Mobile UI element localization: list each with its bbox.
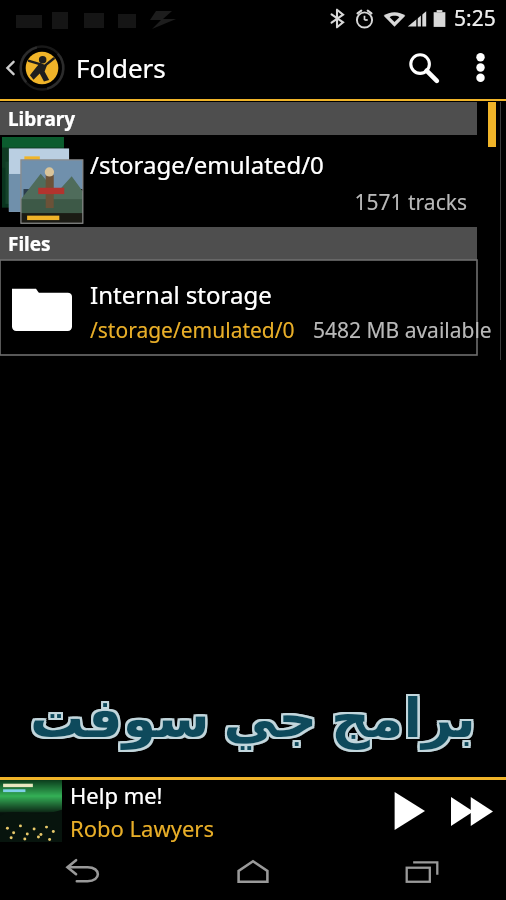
staticText: /storage/emulated/0 (90, 316, 295, 345)
button[interactable]: Next track (438, 780, 506, 842)
staticText: برامج جي سوفت (32, 677, 478, 751)
button[interactable]: Up (0, 36, 68, 99)
staticText: Folders (76, 50, 166, 85)
staticText: Help me! (70, 780, 163, 810)
staticText: برامج جي سوفت (28, 679, 474, 753)
staticText: Files (8, 231, 51, 257)
button[interactable]: /storage/emulated/0 (0, 135, 477, 227)
staticText: برامج جي سوفت (28, 677, 474, 751)
staticText: Library (8, 106, 76, 132)
button[interactable]: Internal storage (0, 260, 477, 355)
staticText: برامج جي سوفت (28, 681, 474, 755)
button[interactable]: More options (454, 36, 506, 99)
button[interactable]: Search (392, 36, 454, 99)
staticText: /storage/emulated/0 (90, 148, 324, 181)
staticText: 5:25 (454, 4, 496, 33)
staticText: 5482 MB available (313, 316, 492, 345)
button[interactable]: Recent apps (337, 842, 506, 900)
staticText: برامج جي سوفت (32, 681, 478, 755)
staticText: برامج جي سوفت (30, 679, 476, 753)
button[interactable]: Back (0, 842, 168, 900)
staticText: Internal storage (90, 278, 272, 311)
staticText: 1571 tracks (0, 188, 467, 217)
staticText: برامج جي سوفت (30, 681, 476, 755)
staticText: برامج جي سوفت (30, 677, 476, 751)
button[interactable]: Help me! (70, 780, 378, 842)
staticText: Robo Lawyers (70, 813, 214, 842)
button[interactable]: Home (168, 842, 337, 900)
button[interactable]: Play (378, 780, 438, 842)
staticText: برامج جي سوفت (32, 679, 478, 753)
